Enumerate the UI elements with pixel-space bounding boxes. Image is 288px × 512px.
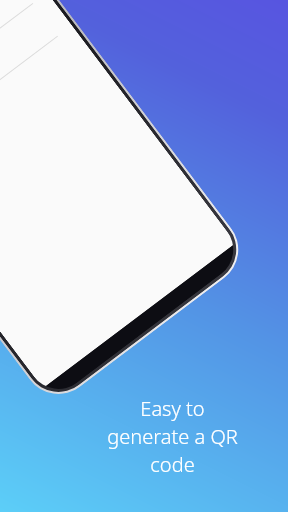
staticText: Easy to generate a QR code (107, 395, 238, 478)
button[interactable]: WIFI QR Generator (0, 0, 27, 111)
